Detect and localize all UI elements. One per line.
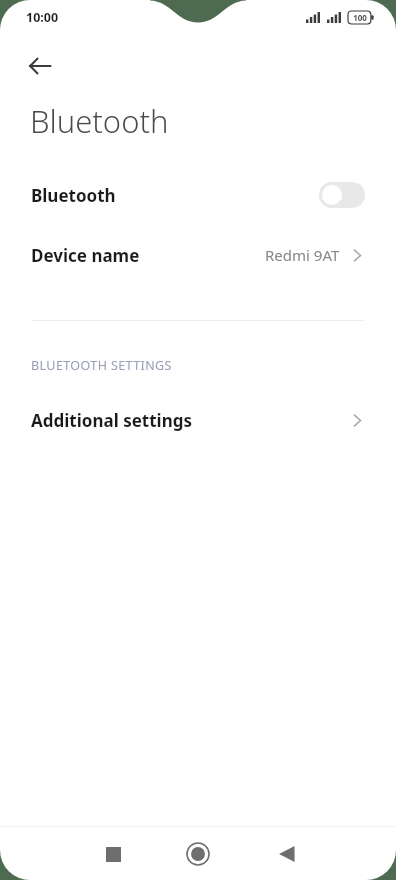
button[interactable]: Back (263, 830, 311, 878)
staticText: Redmi 9AT (265, 245, 340, 265)
staticText: BLUETOOTH SETTINGS (31, 357, 172, 374)
staticText: Device name (31, 244, 140, 267)
button[interactable]: Recent apps (89, 830, 137, 878)
staticText: 100 (353, 12, 367, 23)
button[interactable]: Home (174, 830, 222, 878)
button[interactable]: Bluetooth (0, 166, 396, 224)
button[interactable]: Additional settings (0, 398, 396, 442)
button[interactable]: Back (14, 40, 66, 92)
button[interactable]: Device name (0, 224, 396, 286)
staticText: Additional settings (31, 409, 192, 432)
button[interactable]: Bluetooth toggle (319, 182, 365, 208)
staticText: 10:00 (26, 9, 59, 26)
staticText: Bluetooth (31, 184, 116, 207)
staticText: Bluetooth (30, 100, 169, 142)
